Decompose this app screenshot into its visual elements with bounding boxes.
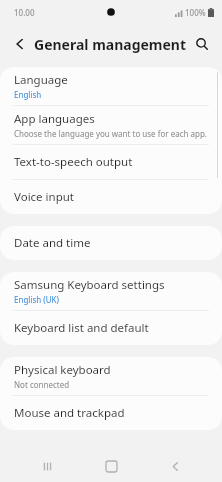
button[interactable]: Keyboard list and default [0, 311, 222, 345]
staticText: General management [34, 35, 187, 54]
button[interactable]: App languages [0, 106, 222, 145]
button[interactable]: Back [158, 450, 192, 482]
staticText: Keyboard list and default [14, 320, 149, 336]
staticText: App languages [14, 111, 95, 127]
staticText: English [14, 89, 42, 100]
staticText: Mouse and trackpad [14, 405, 125, 421]
staticText: English (UK) [14, 294, 59, 305]
button[interactable]: Physical keyboard [0, 357, 222, 396]
button[interactable]: Search [188, 30, 216, 58]
staticText: 100% [185, 7, 206, 18]
button[interactable]: Mouse and trackpad [0, 396, 222, 430]
button[interactable]: Date and time [0, 226, 222, 260]
staticText: Language [14, 72, 68, 88]
staticText: Text-to-speech output [14, 154, 133, 170]
button[interactable]: Language [0, 67, 222, 106]
staticText: Date and time [14, 235, 91, 251]
button[interactable]: Text-to-speech output [0, 145, 222, 180]
button[interactable]: Voice input [0, 180, 222, 214]
staticText: 10.00 [14, 7, 35, 18]
staticText: Samsung Keyboard settings [14, 277, 165, 293]
button[interactable]: Back [6, 30, 34, 58]
button[interactable]: Recents [30, 450, 64, 482]
staticText: Voice input [14, 189, 74, 205]
staticText: Choose the language you want to use for … [14, 128, 208, 139]
staticText: Physical keyboard [14, 362, 111, 378]
staticText: Not connected [14, 379, 70, 390]
button[interactable]: Home [94, 450, 128, 482]
button[interactable]: Samsung Keyboard settings [0, 272, 222, 311]
